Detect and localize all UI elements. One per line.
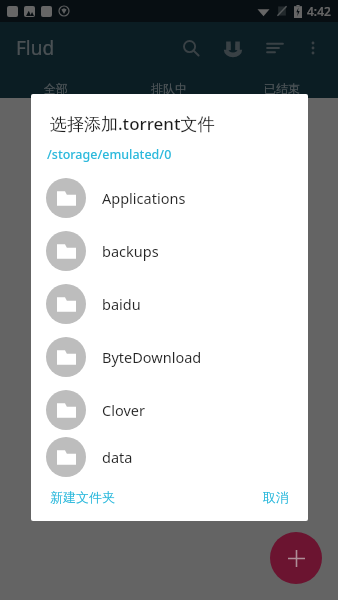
staticText: 选择添加.torrent文件 — [50, 112, 215, 135]
button[interactable]: backups — [31, 224, 308, 277]
button[interactable]: 排队中 — [112, 81, 225, 98]
staticText: data — [102, 447, 133, 467]
staticText: 取消 — [263, 489, 289, 505]
staticText: Applications — [102, 188, 186, 208]
button[interactable]: Clover — [31, 383, 308, 436]
button[interactable]: Add torrent — [270, 532, 322, 584]
staticText: 4:42 — [307, 3, 331, 19]
staticText: ByteDownload — [102, 347, 202, 367]
staticText: 已结束 — [264, 81, 300, 96]
staticText: 新建文件夹 — [50, 489, 115, 505]
button[interactable]: Search — [176, 33, 206, 63]
button[interactable]: 全部 — [0, 81, 112, 98]
staticText: Flud — [16, 35, 55, 61]
staticText: Clover — [102, 400, 145, 420]
staticText: backups — [102, 241, 159, 261]
button[interactable]: ByteDownload — [31, 330, 308, 383]
button[interactable]: Applications — [31, 171, 308, 224]
button[interactable]: Sort — [260, 33, 290, 63]
button[interactable]: baidu — [31, 277, 308, 330]
staticText: 添加一个新的种子。 — [111, 352, 228, 368]
button[interactable]: 取消 — [261, 485, 291, 509]
staticText: /storage/emulated/0 — [47, 146, 172, 163]
button[interactable]: Add magnet link — [218, 33, 248, 63]
staticText: baidu — [102, 294, 141, 314]
button[interactable]: 新建文件夹 — [48, 485, 117, 509]
staticText: 您还没有添加任何种子,点击右下角的按钮来 — [44, 330, 295, 348]
staticText: 排队中 — [151, 81, 187, 96]
button[interactable]: More options — [298, 33, 328, 63]
button[interactable]: 已结束 — [225, 81, 338, 98]
staticText: 全部 — [44, 81, 68, 96]
button[interactable]: data — [31, 436, 308, 477]
